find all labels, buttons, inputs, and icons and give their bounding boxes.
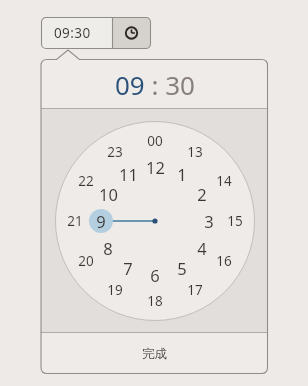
staticText: 9: [96, 210, 106, 232]
staticText: 16: [216, 252, 232, 270]
staticText: 12: [146, 156, 165, 178]
staticText: 22: [78, 172, 94, 190]
staticText: 14: [216, 172, 232, 190]
staticText: 17: [187, 281, 203, 299]
staticText: 3: [204, 210, 214, 232]
staticText: 5: [177, 257, 187, 279]
staticText: 10: [99, 183, 118, 205]
staticText: 1: [177, 163, 187, 185]
staticText: 7: [123, 257, 133, 279]
staticText: 20: [78, 252, 94, 270]
staticText: 21: [67, 212, 83, 230]
staticText: 6: [150, 264, 160, 286]
staticText: 15: [227, 212, 243, 230]
staticText: 18: [147, 292, 163, 310]
button[interactable]: 完成: [41, 333, 268, 374]
staticText: 4: [197, 237, 207, 259]
staticText: 2: [197, 183, 207, 205]
staticText: 00: [147, 132, 163, 150]
staticText: 19: [107, 281, 123, 299]
staticText: 完成: [142, 346, 167, 362]
staticText: 13: [187, 143, 203, 161]
staticText: 8: [103, 237, 113, 259]
staticText: 09:30: [54, 24, 91, 42]
button[interactable]: Open time picker: [112, 17, 151, 49]
staticText: 11: [119, 163, 138, 185]
staticText: 09 : 30: [115, 67, 195, 102]
button[interactable]: 09:30: [41, 17, 112, 49]
staticText: 23: [107, 143, 123, 161]
